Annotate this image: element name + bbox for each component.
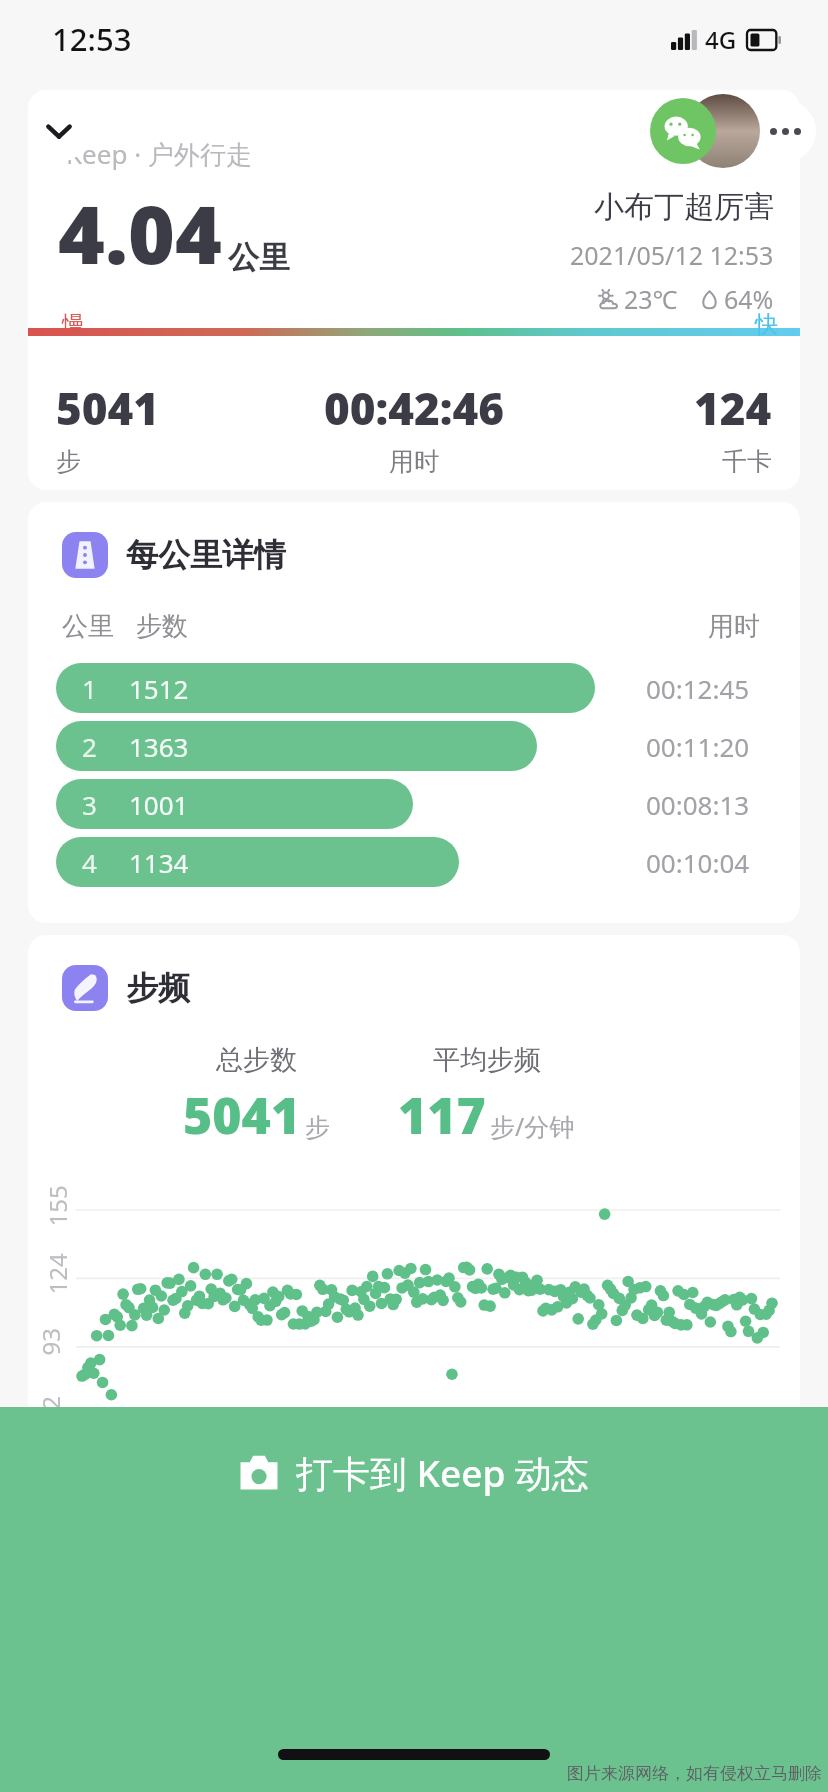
- staticText: 00:12:45: [646, 671, 750, 706]
- button[interactable]: User avatar: [686, 94, 760, 168]
- staticText: 00:42:46: [324, 378, 505, 438]
- staticText: 124: [40, 1252, 73, 1294]
- staticText: 慢: [62, 310, 85, 339]
- staticText: 62: [33, 1395, 66, 1423]
- staticText: 00:10:04: [646, 845, 750, 880]
- button[interactable]: Collapse: [28, 100, 90, 162]
- staticText: 公里: [228, 238, 290, 277]
- staticText: 64%: [724, 282, 774, 316]
- button[interactable]: 2: [28, 721, 800, 771]
- staticText: 1001: [129, 787, 189, 822]
- staticText: 步频: [126, 968, 190, 1008]
- staticText: 千卡: [722, 446, 772, 477]
- staticText: 步数: [136, 610, 188, 643]
- staticText: 117: [398, 1081, 486, 1149]
- button[interactable]: Share to WeChat: [650, 98, 716, 164]
- staticText: 打卡到 Keep 动态: [296, 1447, 590, 1498]
- button[interactable]: More options: [754, 100, 816, 162]
- button[interactable]: 4: [28, 837, 800, 887]
- staticText: 2021/05/12 12:53: [570, 238, 774, 272]
- staticText: 1512: [129, 671, 189, 706]
- staticText: 步: [305, 1112, 330, 1143]
- staticText: 步/分钟: [490, 1109, 575, 1143]
- staticText: 1: [82, 671, 97, 706]
- staticText: 155: [40, 1184, 73, 1226]
- button[interactable]: 步频: [28, 965, 800, 1011]
- staticText: 4.04: [58, 178, 222, 287]
- button[interactable]: 1: [28, 663, 800, 713]
- staticText: 步: [56, 446, 81, 477]
- staticText: 总步数: [216, 1043, 297, 1077]
- staticText: Keep · 户外行走: [66, 136, 252, 172]
- staticText: 1363: [129, 729, 189, 764]
- button[interactable]: 打卡到 Keep 动态: [0, 1407, 828, 1792]
- button[interactable]: 3: [28, 779, 800, 829]
- staticText: 用时: [389, 446, 439, 477]
- staticText: 1134: [129, 845, 189, 880]
- staticText: 5041: [56, 378, 160, 438]
- staticText: 每公里详情: [126, 535, 286, 575]
- staticText: 12:53: [52, 18, 132, 60]
- button[interactable]: 每公里详情: [28, 532, 800, 578]
- staticText: 00:11:20: [646, 729, 750, 764]
- staticText: 平均步频: [433, 1043, 541, 1077]
- staticText: 快: [755, 310, 778, 339]
- staticText: 图片来源网络，如有侵权立马删除: [567, 1763, 822, 1784]
- staticText: 00:08:13: [646, 787, 750, 822]
- staticText: 4: [82, 845, 97, 880]
- staticText: 93: [33, 1327, 66, 1355]
- staticText: 3: [82, 787, 97, 822]
- staticText: 小布丁超厉害: [594, 188, 774, 226]
- staticText: 公里: [62, 610, 114, 643]
- staticText: 124: [694, 378, 772, 438]
- staticText: 用时: [708, 610, 760, 643]
- staticText: 4G: [705, 23, 737, 56]
- staticText: 5041: [183, 1081, 301, 1149]
- staticText: 23℃: [624, 282, 678, 316]
- staticText: 2: [82, 729, 97, 764]
